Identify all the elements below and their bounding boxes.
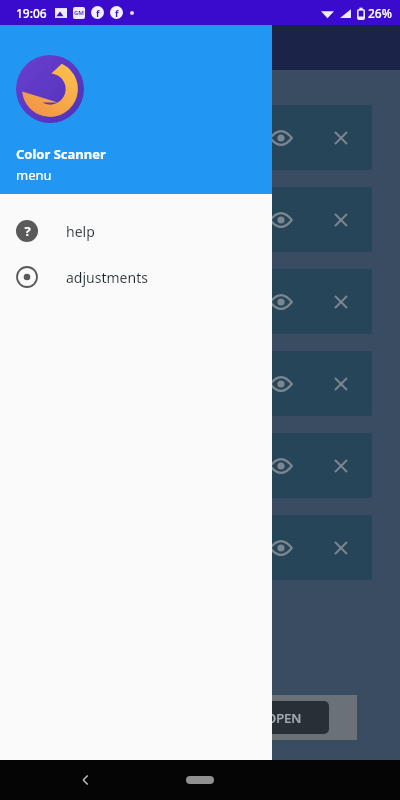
staticText: 19:06	[16, 5, 47, 21]
button[interactable]: Remove	[326, 287, 356, 317]
button[interactable]: Remove	[326, 205, 356, 235]
staticText: Color Scanner	[16, 145, 106, 163]
button[interactable]: Remove	[326, 369, 356, 399]
button[interactable]: adjustments	[0, 254, 272, 300]
staticText: help	[66, 222, 95, 241]
button[interactable]: Preview	[36, 187, 372, 252]
button[interactable]: Remove	[326, 533, 356, 563]
staticText: GM	[74, 9, 85, 17]
staticText: OPEN	[266, 709, 302, 727]
button[interactable]: Remove	[326, 123, 356, 153]
button[interactable]: Preview	[266, 369, 296, 399]
button[interactable]: Preview	[266, 287, 296, 317]
button[interactable]: Preview	[266, 123, 296, 153]
staticText: f	[115, 7, 119, 19]
button[interactable]: Back	[72, 766, 100, 794]
button[interactable]: Preview	[36, 269, 372, 334]
button[interactable]: Home	[178, 770, 222, 790]
staticText: ?	[24, 222, 31, 240]
button[interactable]: Preview	[266, 205, 296, 235]
button[interactable]: Preview	[36, 515, 372, 580]
staticText: adjustments	[66, 268, 148, 287]
button[interactable]: ?	[0, 208, 272, 254]
button[interactable]: Preview	[266, 451, 296, 481]
staticText: 26%	[368, 5, 392, 21]
staticText: f	[96, 7, 100, 19]
button[interactable]: Preview	[266, 533, 296, 563]
button[interactable]: Preview	[36, 105, 372, 170]
button[interactable]: OPEN	[239, 701, 329, 734]
button[interactable]: Preview	[36, 433, 372, 498]
button[interactable]: Preview	[36, 351, 372, 416]
button[interactable]: Remove	[326, 451, 356, 481]
staticText: menu	[16, 166, 52, 184]
